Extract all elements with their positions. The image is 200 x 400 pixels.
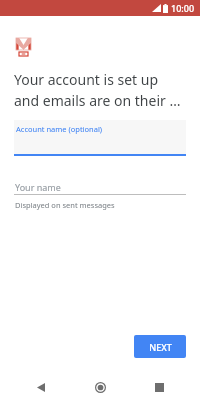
staticText: Account name (optional) bbox=[16, 124, 103, 134]
staticText: Displayed on sent messages bbox=[15, 200, 115, 210]
button[interactable]: NEXT bbox=[134, 335, 186, 358]
button[interactable]: Recent apps bbox=[141, 374, 177, 400]
button[interactable]: Home bbox=[82, 374, 118, 400]
staticText: and emails are on their … bbox=[14, 91, 181, 110]
button[interactable]: Your name bbox=[14, 178, 186, 210]
staticText: 10:00 bbox=[171, 2, 195, 14]
staticText: Your account is set up bbox=[14, 70, 159, 89]
staticText: Your name bbox=[15, 181, 61, 193]
button[interactable]: Account name (optional) bbox=[14, 120, 186, 156]
button[interactable]: Back bbox=[23, 374, 59, 400]
staticText: NEXT bbox=[149, 341, 172, 353]
